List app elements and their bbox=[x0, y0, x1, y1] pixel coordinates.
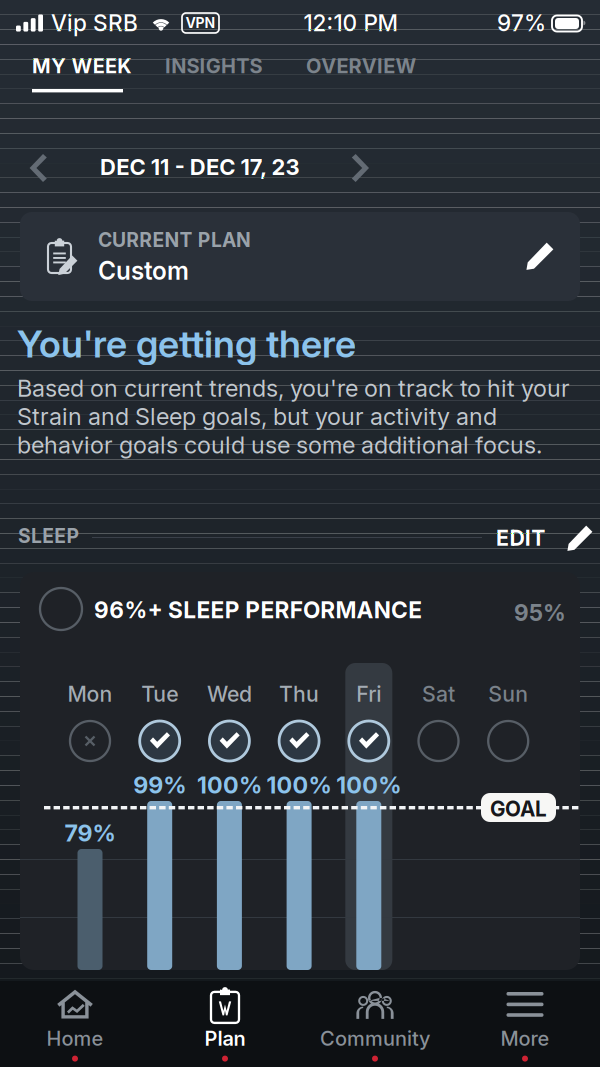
staticText: More bbox=[500, 1026, 549, 1051]
staticText: Vip SRB bbox=[51, 9, 138, 37]
button[interactable]: Next week bbox=[353, 154, 373, 182]
button[interactable]: Home bbox=[0, 981, 150, 1067]
staticText: GOAL bbox=[490, 796, 547, 821]
button[interactable]: CURRENT PLAN bbox=[20, 212, 580, 301]
staticText: EDIT bbox=[496, 525, 545, 551]
staticText: You're getting there bbox=[17, 321, 356, 366]
staticText: Sun bbox=[488, 681, 528, 707]
staticText: VPN bbox=[185, 14, 215, 31]
staticText: Tue bbox=[141, 681, 178, 707]
staticText: MY WEEK bbox=[32, 54, 131, 78]
button[interactable]: EDIT bbox=[496, 525, 593, 551]
staticText: Thu bbox=[279, 681, 319, 707]
staticText: 100% bbox=[267, 771, 332, 799]
button[interactable]: More bbox=[450, 981, 600, 1067]
staticText: 96%+ SLEEP PERFORMANCE bbox=[94, 596, 422, 624]
staticText: 97% bbox=[497, 9, 546, 37]
staticText: Plan bbox=[204, 1026, 245, 1051]
staticText: Based on current trends, you're on track… bbox=[17, 374, 570, 459]
staticText: Home bbox=[46, 1026, 103, 1051]
staticText: SLEEP bbox=[18, 524, 79, 548]
button[interactable]: OVERVIEW bbox=[306, 56, 456, 76]
button[interactable]: MY WEEK bbox=[32, 56, 172, 79]
staticText: Mon bbox=[67, 681, 112, 707]
staticText: Custom bbox=[98, 256, 189, 286]
button[interactable]: INSIGHTS bbox=[165, 56, 305, 76]
staticText: 12:10 PM bbox=[303, 9, 398, 37]
staticText: Sat bbox=[422, 681, 455, 707]
staticText: INSIGHTS bbox=[165, 54, 262, 78]
staticText: 100% bbox=[336, 771, 401, 799]
staticText: OVERVIEW bbox=[306, 54, 416, 78]
staticText: Fri bbox=[356, 681, 381, 707]
staticText: CURRENT PLAN bbox=[98, 228, 251, 252]
staticText: Community bbox=[320, 1026, 430, 1051]
staticText: 79% bbox=[64, 819, 115, 847]
staticText: 99% bbox=[133, 771, 186, 799]
button[interactable]: Community bbox=[300, 981, 450, 1067]
staticText: 95% bbox=[514, 599, 566, 626]
button[interactable]: Plan bbox=[150, 981, 300, 1067]
button[interactable]: Previous week bbox=[27, 154, 47, 182]
staticText: 100% bbox=[197, 771, 262, 799]
staticText: DEC 11 - DEC 17, 23 bbox=[100, 154, 300, 180]
staticText: Wed bbox=[207, 681, 252, 707]
